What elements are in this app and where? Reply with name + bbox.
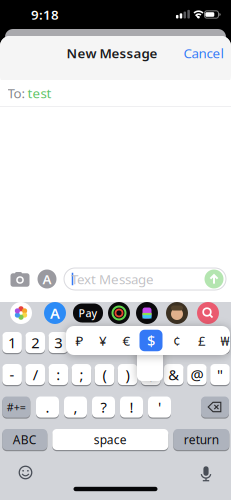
button[interactable]: Apple Pay: [73, 303, 103, 322]
staticText: Text Message: [71, 270, 154, 288]
staticText: Pay: [78, 306, 97, 320]
staticText: 1: [8, 333, 16, 352]
button[interactable]: Clips: [136, 302, 158, 324]
button[interactable]: -: [2, 363, 22, 386]
button[interactable]: Memoji Stickers: [166, 302, 188, 324]
button[interactable]: ABC: [2, 428, 47, 451]
staticText: @: [190, 365, 203, 384]
button[interactable]: ): [118, 363, 137, 386]
staticText: 4: [77, 333, 85, 352]
staticText: ABC: [13, 431, 37, 447]
button[interactable]: 4: [72, 331, 91, 354]
button[interactable]: Emoji: [17, 464, 33, 480]
staticText: 8: [170, 333, 178, 352]
button[interactable]: return: [173, 428, 229, 451]
staticText: -: [10, 365, 15, 384]
staticText: ¥: [99, 332, 107, 349]
button[interactable]: 6: [118, 331, 137, 354]
button[interactable]: App Store: [44, 302, 66, 324]
button[interactable]: /: [25, 363, 45, 386]
staticText: .: [45, 397, 49, 417]
button[interactable]: Send: [204, 269, 223, 288]
staticText: ;: [79, 365, 83, 384]
staticText: 7: [147, 333, 155, 352]
staticText: ": [217, 365, 223, 384]
button[interactable]: 5: [95, 331, 114, 354]
button[interactable]: 3: [48, 331, 68, 354]
button[interactable]: .: [36, 396, 59, 418]
staticText: return: [184, 431, 219, 447]
button[interactable]: Delete: [201, 396, 229, 418]
staticText: 2: [31, 333, 39, 352]
staticText: £: [198, 332, 206, 349]
staticText: To:: [7, 84, 25, 102]
staticText: A: [50, 303, 60, 323]
staticText: :: [56, 365, 60, 384]
button[interactable]: ;: [72, 363, 91, 386]
staticText: $: [147, 331, 155, 350]
staticText: 9: [193, 333, 201, 352]
button[interactable]: &: [164, 363, 184, 386]
button[interactable]: Apps: [37, 269, 56, 288]
staticText: space: [94, 431, 127, 447]
staticText: ?: [100, 397, 106, 417]
staticText: !: [129, 397, 133, 417]
button[interactable]: 8: [164, 331, 184, 354]
staticText: #+=: [7, 400, 26, 414]
staticText: ': [158, 397, 161, 417]
button[interactable]: @: [187, 363, 207, 386]
button[interactable]: ?: [92, 396, 115, 418]
button[interactable]: $: [141, 363, 160, 386]
staticText: ₽: [75, 332, 83, 349]
staticText: ₩: [220, 332, 229, 349]
staticText: 3: [54, 333, 62, 352]
button[interactable]: space: [52, 428, 168, 451]
staticText: New Message: [66, 44, 157, 62]
staticText: ,: [73, 397, 77, 417]
staticText: 0: [216, 333, 224, 352]
button[interactable]: :: [48, 363, 68, 386]
button[interactable]: 0: [210, 331, 230, 354]
staticText: ¢: [173, 332, 181, 349]
button[interactable]: ,: [64, 396, 87, 418]
button[interactable]: 1: [2, 331, 22, 354]
button[interactable]: Cancel: [183, 44, 223, 62]
staticText: (: [102, 365, 106, 384]
button[interactable]: 9: [187, 331, 207, 354]
button[interactable]: Games: [108, 302, 130, 324]
staticText: A: [42, 270, 51, 288]
staticText: 6: [124, 333, 132, 352]
button[interactable]: !: [120, 396, 143, 418]
button[interactable]: Camera: [10, 270, 30, 288]
button[interactable]: Dictation: [198, 464, 214, 482]
staticText: €: [122, 332, 130, 349]
staticText: &: [168, 365, 179, 384]
staticText: 9:18: [31, 6, 59, 23]
button[interactable]: ": [210, 363, 230, 386]
button[interactable]: Photos: [10, 302, 32, 324]
staticText: test: [27, 84, 51, 102]
staticText: 5: [100, 333, 108, 352]
button[interactable]: ': [148, 396, 171, 418]
button[interactable]: #+=: [2, 396, 30, 418]
staticText: /: [33, 365, 38, 384]
button[interactable]: (: [95, 363, 114, 386]
button[interactable]: 7: [141, 331, 160, 354]
staticText: Cancel: [183, 44, 223, 62]
staticText: $: [147, 365, 155, 384]
button[interactable]: 2: [25, 331, 45, 354]
staticText: ): [126, 365, 130, 384]
button[interactable]: Search Images: [197, 302, 219, 324]
